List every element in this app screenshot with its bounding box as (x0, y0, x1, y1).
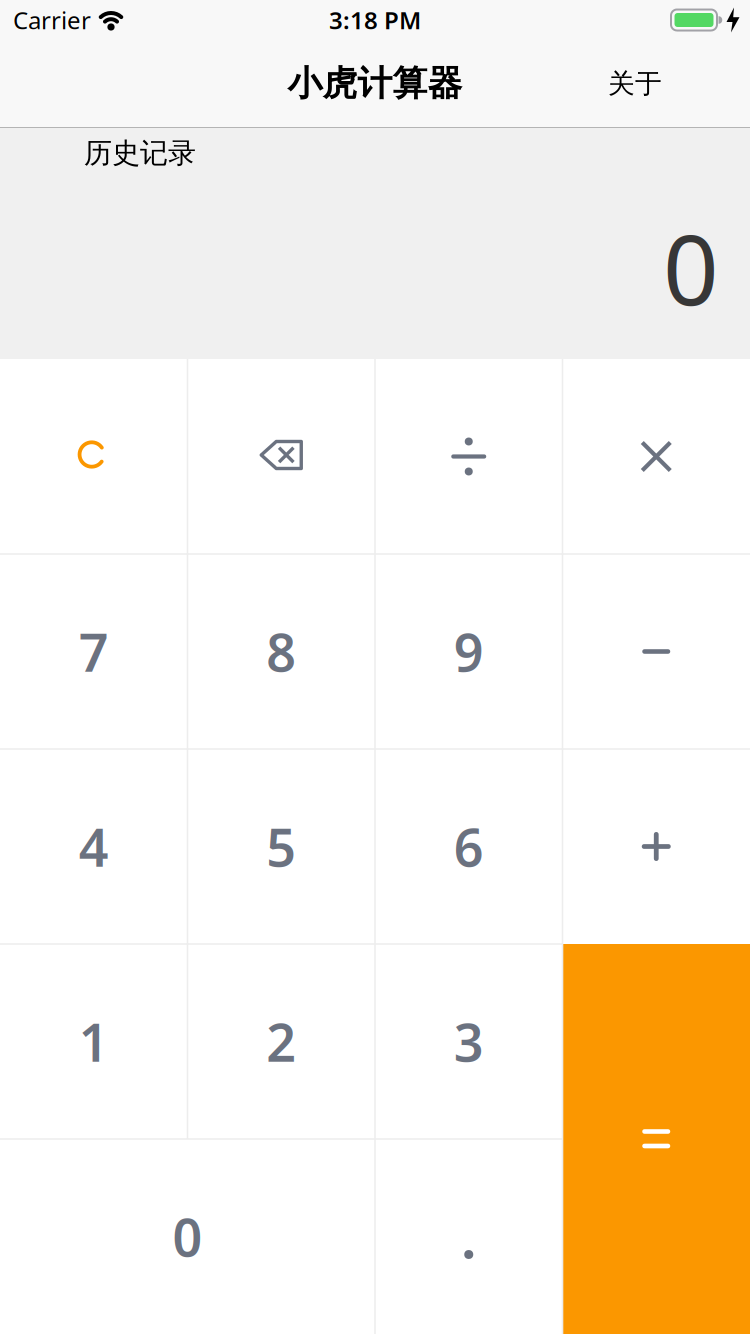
button[interactable]: 删除 (187, 359, 375, 554)
button[interactable]: 1 (0, 944, 187, 1139)
button[interactable]: 4 (0, 749, 187, 944)
button[interactable]: 8 (187, 554, 375, 749)
button[interactable]: 加 (562, 749, 750, 944)
button[interactable]: 2 (187, 944, 375, 1139)
staticText: 7 (79, 617, 109, 686)
button[interactable]: 3 (375, 944, 562, 1139)
button[interactable]: 0 (0, 1139, 375, 1334)
button[interactable]: 关于 (608, 67, 662, 100)
button[interactable]: 历史记录 (84, 136, 196, 170)
button[interactable]: 清除 (0, 359, 187, 554)
button[interactable]: 等于 (562, 944, 750, 1334)
staticText: 小虎计算器 (287, 62, 462, 105)
staticText: 3:18 PM (329, 4, 421, 36)
staticText: 2 (266, 1007, 296, 1076)
staticText: 0 (172, 1202, 202, 1271)
staticText: 8 (266, 617, 296, 686)
staticText: 历史记录 (84, 136, 196, 170)
staticText: 4 (79, 812, 109, 881)
staticText: 6 (454, 812, 484, 881)
staticText: Carrier (13, 4, 91, 36)
button[interactable]: 乘 (562, 359, 750, 554)
button[interactable]: 小数点 (375, 1139, 562, 1334)
button[interactable]: 除 (375, 359, 562, 554)
button[interactable]: 9 (375, 554, 562, 749)
staticText: 关于 (608, 67, 662, 100)
staticText: 1 (79, 1007, 109, 1076)
staticText: 0 (663, 203, 719, 332)
button[interactable]: 减 (562, 554, 750, 749)
staticText: 9 (454, 617, 484, 686)
staticText: 3 (454, 1007, 484, 1076)
button[interactable]: 6 (375, 749, 562, 944)
button[interactable]: 7 (0, 554, 187, 749)
staticText: 5 (266, 812, 296, 881)
button[interactable]: 5 (187, 749, 375, 944)
